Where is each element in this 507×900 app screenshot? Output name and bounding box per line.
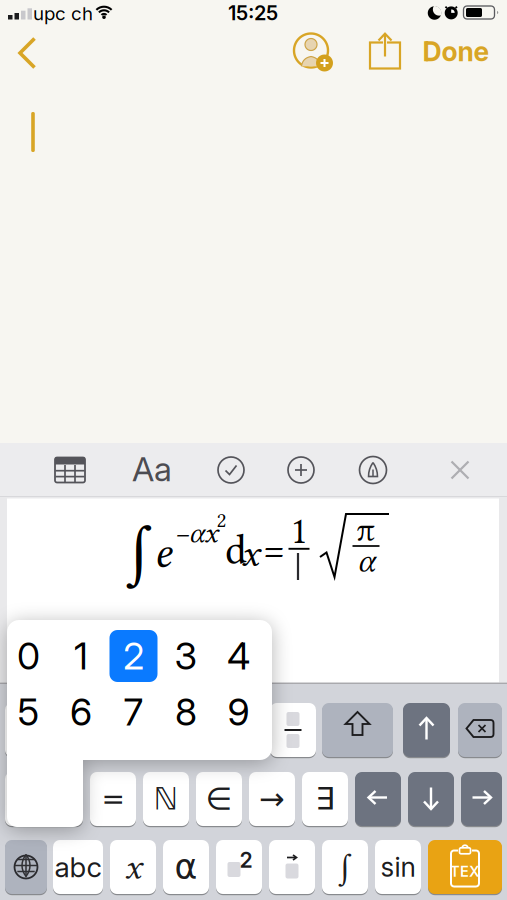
button[interactable]: 1 [57, 630, 105, 682]
button[interactable]: Markup [359, 456, 386, 483]
staticText: π [356, 511, 375, 549]
staticText: 15:25 [228, 1, 278, 25]
staticText: ∫ [126, 511, 151, 590]
button[interactable]: 6 [57, 686, 105, 738]
staticText: α [174, 847, 197, 887]
staticText: Done [422, 36, 489, 67]
staticText: 7 [123, 690, 143, 734]
button[interactable]: Move up [403, 701, 450, 758]
button[interactable]: Move left [355, 770, 401, 827]
staticText: x [241, 531, 259, 576]
staticText: TEX [450, 863, 480, 880]
button[interactable]: maps to [249, 770, 295, 827]
staticText: 8 [175, 690, 197, 734]
staticText: 3 [174, 634, 197, 678]
button[interactable]: key [164, 701, 210, 758]
staticText: = [101, 783, 124, 815]
staticText: 1 [290, 510, 307, 552]
staticText: 5 [17, 690, 39, 734]
button[interactable]: key [5, 770, 83, 827]
button[interactable]: Back [10, 36, 43, 69]
staticText: e [154, 528, 172, 578]
staticText: 2 [239, 847, 252, 873]
button[interactable]: key [111, 701, 157, 758]
staticText: ∃ [315, 781, 334, 817]
staticText: 0 [17, 634, 40, 678]
button[interactable]: Fraction [270, 701, 316, 758]
button[interactable]: Format [132, 449, 172, 489]
staticText: = [263, 527, 285, 573]
button[interactable]: Move right [461, 770, 502, 827]
staticText: 1 [74, 634, 88, 678]
staticText: upc ch [33, 2, 93, 24]
button[interactable]: Add attachment [287, 456, 315, 484]
staticText: ℕ [153, 781, 178, 817]
button[interactable]: equals [90, 770, 136, 827]
button[interactable]: vector [269, 838, 315, 895]
staticText: 4 [227, 634, 250, 678]
button[interactable]: Paste TeX [428, 838, 502, 895]
staticText: 2 [123, 634, 144, 678]
button[interactable]: key [5, 701, 51, 758]
button[interactable]: Move down [408, 770, 454, 827]
button[interactable]: 5 [4, 686, 52, 738]
button[interactable]: 4 [214, 630, 262, 682]
button[interactable]: abc [53, 838, 103, 895]
staticText: ∈ [205, 781, 232, 817]
staticText: 9 [227, 690, 249, 734]
staticText: abc [54, 850, 101, 883]
button[interactable]: Checklist [217, 456, 245, 484]
staticText: α [357, 542, 374, 580]
staticText: ∫ [338, 846, 351, 887]
staticText: Aa [132, 449, 172, 489]
button[interactable]: 3 [162, 630, 210, 682]
staticText: 2 [216, 508, 226, 532]
button[interactable]: Next keyboard [5, 838, 47, 895]
button[interactable]: 0 [4, 630, 52, 682]
button[interactable]: x [110, 838, 156, 895]
button[interactable]: key [58, 701, 104, 758]
button[interactable]: integral [322, 838, 368, 895]
staticText: → [259, 781, 285, 817]
button[interactable]: element of [196, 770, 242, 827]
button[interactable]: Insert table [54, 456, 86, 483]
staticText: sin [380, 851, 415, 883]
button[interactable]: 9 [214, 686, 262, 738]
button[interactable]: Share [368, 31, 402, 70]
staticText: d [225, 526, 247, 574]
button[interactable]: there exists [302, 770, 348, 827]
button[interactable]: sine [375, 838, 421, 895]
button[interactable]: 2 [109, 630, 157, 682]
button[interactable]: Dismiss keyboard [448, 458, 471, 481]
staticText: x [124, 846, 141, 887]
button[interactable]: alpha [163, 838, 209, 895]
button[interactable]: 8 [162, 686, 210, 738]
button[interactable]: Delete [458, 701, 502, 758]
button[interactable]: Done [422, 36, 489, 67]
button[interactable]: superscript [216, 838, 262, 895]
button[interactable]: Add people [289, 31, 339, 73]
button[interactable]: natural numbers [143, 770, 189, 827]
button[interactable]: Shift [322, 701, 393, 758]
staticText: 6 [70, 690, 92, 734]
button[interactable]: key [217, 701, 263, 758]
button[interactable]: 7 [109, 686, 157, 738]
staticText: −αx [174, 516, 218, 550]
